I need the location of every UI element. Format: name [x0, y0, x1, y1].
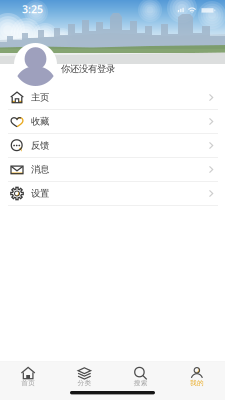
button[interactable]: 主页	[0, 86, 225, 110]
button[interactable]: 搜索	[112, 361, 169, 393]
staticText: 3:25	[22, 2, 43, 16]
staticText: 设置	[31, 188, 49, 199]
staticText: 我的	[190, 379, 204, 387]
staticText: 分类	[77, 379, 91, 387]
button[interactable]: 分类	[56, 361, 112, 393]
staticText: 收藏	[31, 116, 49, 127]
staticText: 主页	[31, 92, 49, 103]
button[interactable]: 首页	[0, 361, 56, 393]
button[interactable]: 设置	[0, 182, 225, 206]
button[interactable]: 反馈	[0, 134, 225, 158]
staticText: 反馈	[31, 140, 49, 151]
staticText: 首页	[21, 379, 35, 387]
button[interactable]: 消息	[0, 158, 225, 182]
staticText: 搜索	[134, 379, 148, 387]
button[interactable]: 我的	[169, 361, 225, 393]
staticText: 消息	[31, 164, 49, 175]
staticText: 你还没有登录	[61, 63, 115, 75]
button[interactable]: 收藏	[0, 110, 225, 134]
